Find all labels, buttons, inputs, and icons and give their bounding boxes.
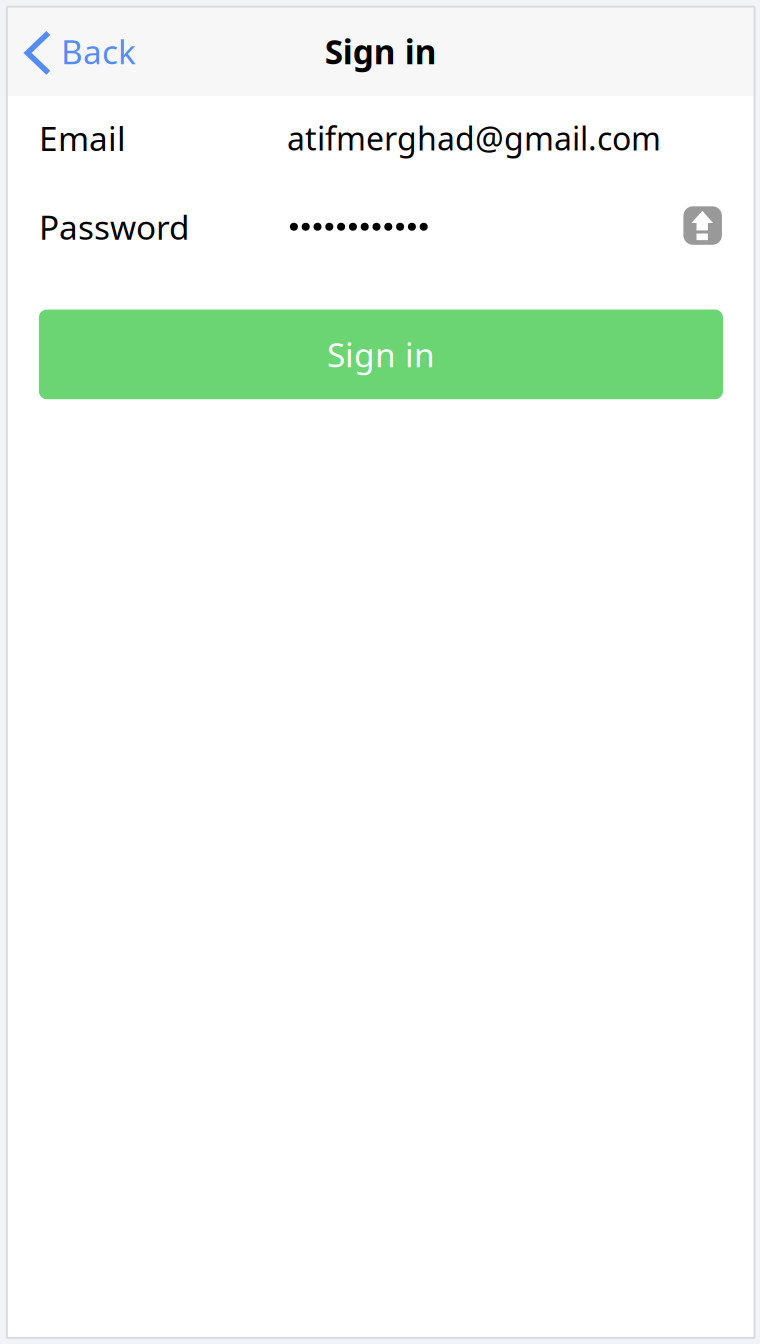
staticText: atifmerghad@gmail.com — [287, 117, 661, 159]
staticText: Sign in — [327, 332, 435, 376]
staticText: Password — [39, 205, 190, 249]
staticText: Email — [39, 116, 126, 160]
staticText: Sign in — [325, 29, 437, 74]
button[interactable]: AutoFill password — [683, 206, 722, 245]
button[interactable]: Back — [7, 7, 148, 96]
button[interactable]: Sign in — [39, 309, 723, 399]
button[interactable]: Password — [7, 182, 684, 271]
button[interactable]: Email — [7, 94, 754, 182]
staticText: Back — [61, 29, 136, 74]
